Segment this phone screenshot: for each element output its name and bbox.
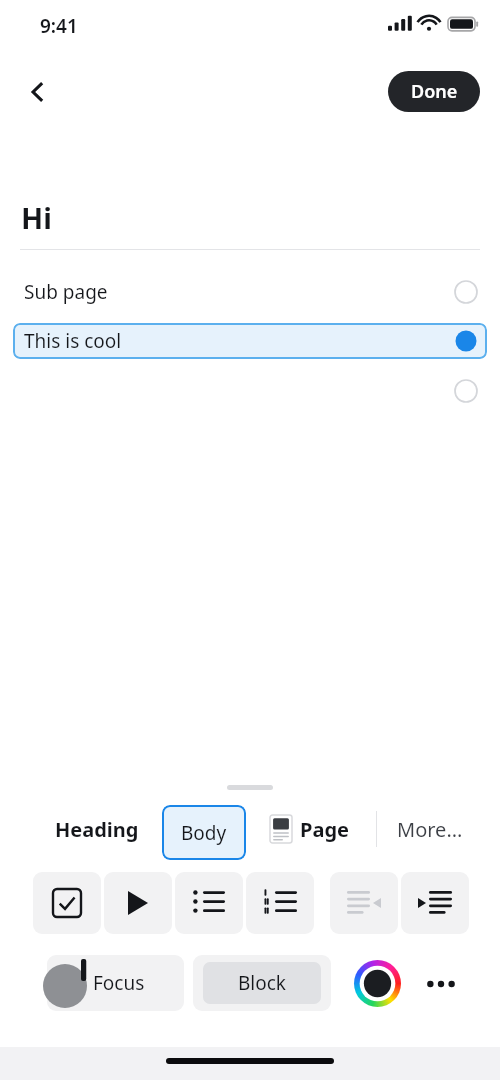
staticText: 9:41 <box>40 13 78 39</box>
staticText: Page <box>300 816 349 843</box>
staticText: Hi <box>21 198 52 237</box>
button[interactable]: Sub page <box>13 274 487 310</box>
button[interactable]: Checklist <box>33 872 101 934</box>
button[interactable] <box>13 373 487 409</box>
staticText: Done <box>411 79 458 104</box>
button[interactable]: Outdent <box>330 872 398 934</box>
staticText: Block <box>238 970 287 996</box>
button[interactable]: Done <box>388 71 480 112</box>
button[interactable]: Back <box>14 68 62 116</box>
button[interactable]: Heading <box>40 808 154 850</box>
button[interactable]: More options <box>420 963 462 1005</box>
button[interactable]: Numbered list <box>246 872 314 934</box>
button[interactable]: Body <box>162 805 246 860</box>
button[interactable]: Page <box>264 808 355 850</box>
staticText: Focus <box>93 970 145 996</box>
button[interactable]: Focus <box>47 955 184 1011</box>
button[interactable]: Block <box>193 955 331 1011</box>
button[interactable]: More... <box>384 808 476 850</box>
staticText: Heading <box>55 816 139 843</box>
button[interactable]: This is cool <box>13 323 487 359</box>
button[interactable]: Bulleted list <box>175 872 243 934</box>
staticText: Body <box>181 820 227 846</box>
button[interactable]: Text colour <box>353 959 402 1008</box>
button[interactable]: Toggle list <box>104 872 172 934</box>
staticText: Sub page <box>24 279 108 305</box>
staticText: More... <box>397 816 463 843</box>
staticText: This is cool <box>24 328 122 354</box>
button[interactable]: Indent <box>401 872 469 934</box>
